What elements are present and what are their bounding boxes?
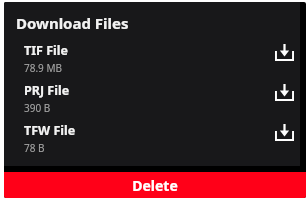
button[interactable]: PRJ File xyxy=(4,77,300,117)
staticText: Delete xyxy=(132,176,178,195)
button[interactable]: Delete xyxy=(4,172,306,198)
staticText: 78 B xyxy=(24,141,45,155)
staticText: Download Files xyxy=(16,13,129,33)
staticText: TIF File xyxy=(24,42,68,59)
button[interactable]: TIF File xyxy=(4,37,300,77)
staticText: 78.9 MB xyxy=(24,61,63,75)
button[interactable]: Download TFW File xyxy=(271,119,297,145)
staticText: TFW File xyxy=(24,122,76,139)
button[interactable]: Download PRJ File xyxy=(271,79,297,105)
staticText: PRJ File xyxy=(24,82,70,99)
button[interactable]: Download TIF File xyxy=(271,39,297,65)
staticText: 390 B xyxy=(24,101,51,115)
button[interactable]: TFW File xyxy=(4,117,300,157)
